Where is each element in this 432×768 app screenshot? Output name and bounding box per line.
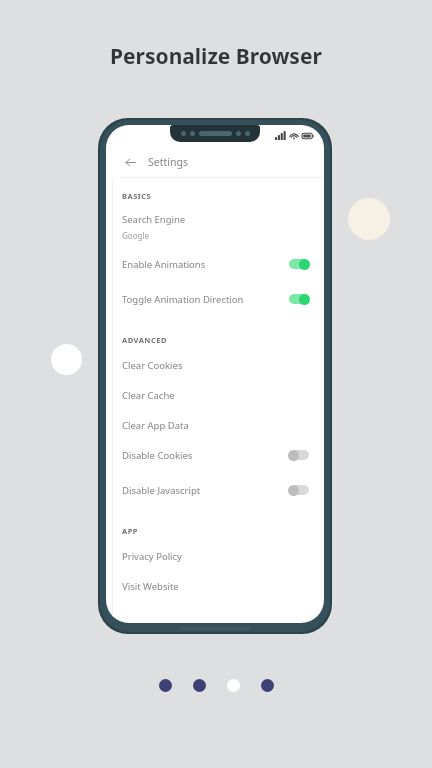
button[interactable]: Visit Website <box>122 579 310 593</box>
button[interactable]: Clear Cache <box>122 388 310 402</box>
button[interactable]: Enable Animations <box>122 254 310 274</box>
staticText: Toggle Animation Direction <box>122 293 244 306</box>
button[interactable]: Privacy Policy <box>122 549 310 563</box>
staticText: Enable Animations <box>122 258 206 271</box>
staticText: Clear App Data <box>122 419 189 432</box>
button[interactable]: Page indicator <box>159 679 172 692</box>
staticText: Clear Cookies <box>122 359 183 372</box>
button[interactable]: Toggle Animation Direction <box>122 289 310 309</box>
button[interactable]: Disable Cookies <box>122 445 310 465</box>
staticText: Visit Website <box>122 580 179 593</box>
staticText: Google <box>122 230 149 241</box>
button[interactable]: Page indicator <box>261 679 274 692</box>
button[interactable]: Clear App Data <box>122 418 310 432</box>
staticText: Search Engine <box>122 213 186 226</box>
staticText: Settings <box>148 155 188 169</box>
button[interactable]: Page indicator <box>193 679 206 692</box>
staticText: Personalize Browser <box>110 42 322 71</box>
staticText: BASICS <box>122 191 152 201</box>
staticText: ADVANCED <box>122 335 167 345</box>
staticText: Clear Cache <box>122 389 175 402</box>
staticText: Privacy Policy <box>122 550 182 563</box>
staticText: Disable Javascript <box>122 484 201 497</box>
button[interactable]: Search Engine <box>122 213 310 241</box>
button[interactable]: Back <box>121 153 139 171</box>
button[interactable]: Page indicator <box>227 679 240 692</box>
staticText: APP <box>122 526 139 536</box>
button[interactable]: Disable Javascript <box>122 480 310 500</box>
button[interactable]: Clear Cookies <box>122 358 310 372</box>
staticText: Disable Cookies <box>122 449 193 462</box>
